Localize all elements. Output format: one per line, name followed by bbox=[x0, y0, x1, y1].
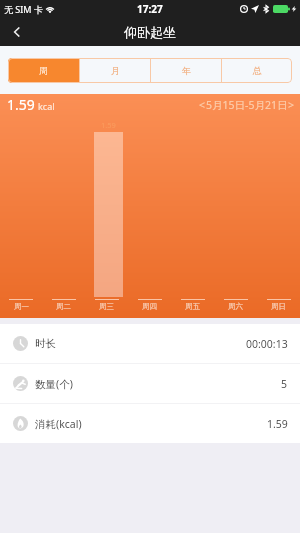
staticText: 无 SIM 卡 bbox=[4, 3, 43, 15]
staticText: 17:27 bbox=[137, 2, 163, 16]
staticText: 1.59 bbox=[267, 417, 288, 431]
staticText: 周五 bbox=[185, 302, 200, 311]
button[interactable]: 年 bbox=[151, 58, 221, 83]
staticText: 周三 bbox=[99, 302, 114, 311]
staticText: 时长 bbox=[35, 337, 56, 350]
staticText: 00:00:13 bbox=[246, 337, 288, 351]
staticText: 周 bbox=[39, 65, 48, 76]
button[interactable]: 消耗(kcal) bbox=[0, 404, 300, 443]
staticText: 数量(个) bbox=[35, 377, 73, 391]
button[interactable]: < bbox=[199, 98, 206, 112]
staticText: 总 bbox=[253, 65, 262, 76]
button[interactable]: > bbox=[288, 98, 295, 112]
staticText: kcal bbox=[38, 100, 55, 112]
button[interactable]: 周 bbox=[8, 58, 79, 83]
button[interactable]: 总 bbox=[222, 58, 292, 83]
staticText: 仰卧起坐 bbox=[124, 24, 176, 40]
button[interactable]: 时长 bbox=[0, 324, 300, 363]
staticText: 年 bbox=[182, 65, 191, 76]
staticText: 周日 bbox=[271, 302, 286, 311]
staticText: 1.59 bbox=[101, 120, 116, 130]
staticText: 周四 bbox=[142, 302, 157, 311]
staticText: 周一 bbox=[14, 302, 29, 311]
button[interactable]: Back bbox=[0, 18, 34, 46]
staticText: 1.59 bbox=[7, 95, 35, 114]
staticText: 周六 bbox=[228, 302, 243, 311]
staticText: 周二 bbox=[56, 302, 71, 311]
button[interactable]: 数量(个) bbox=[0, 364, 300, 403]
button[interactable]: 月 bbox=[80, 58, 150, 83]
staticText: 月 bbox=[111, 65, 120, 76]
staticText: 5 bbox=[281, 377, 288, 391]
staticText: 消耗(kcal) bbox=[35, 417, 82, 431]
button[interactable]: 5月15日-5月21日 bbox=[206, 98, 288, 112]
